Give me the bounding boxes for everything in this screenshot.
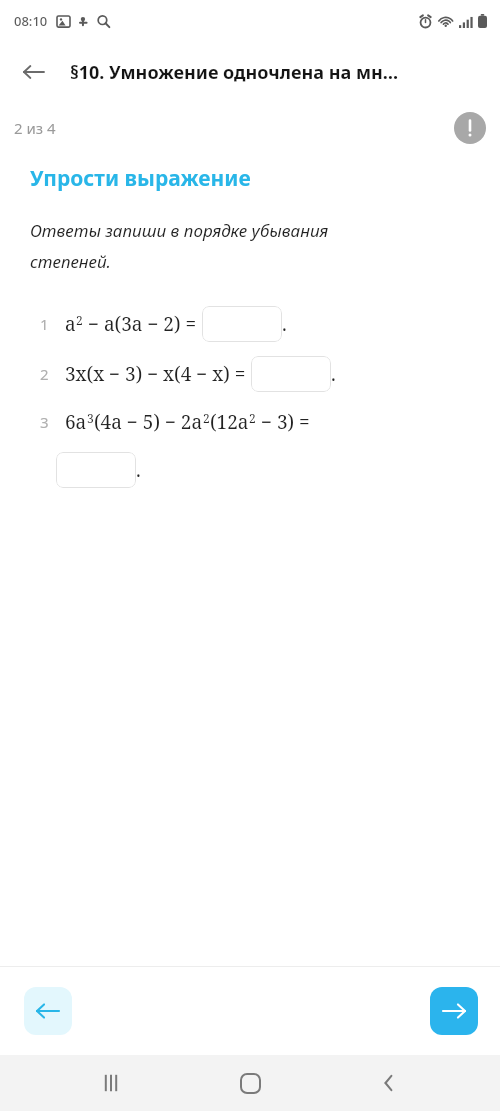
staticText: §10. Умножение одночлена на мн…: [70, 60, 399, 85]
button[interactable]: Back: [361, 1055, 417, 1111]
staticText: 6a: [65, 409, 87, 435]
button[interactable]: Recents: [83, 1055, 139, 1111]
button[interactable]: Previous: [24, 987, 72, 1035]
button[interactable]: Back: [12, 50, 56, 94]
button[interactable]: [251, 356, 331, 392]
button[interactable]: Next: [430, 987, 478, 1035]
staticText: 3: [87, 410, 94, 426]
staticText: Упрости выражение: [30, 164, 251, 193]
staticText: 08:10: [14, 12, 48, 30]
staticText: 1: [40, 314, 49, 334]
staticText: a: [65, 311, 76, 337]
button[interactable]: Info: [454, 112, 486, 144]
button[interactable]: [56, 452, 136, 488]
staticText: 2 из 4: [14, 118, 56, 138]
staticText: Ответы запиши в порядке убывания степене…: [30, 219, 329, 273]
staticText: − 3) =: [256, 409, 310, 435]
staticText: (12a: [210, 409, 249, 435]
staticText: 2: [76, 312, 83, 328]
staticText: 3: [40, 412, 49, 432]
staticText: .: [136, 457, 141, 483]
staticText: 2: [40, 364, 49, 384]
staticText: 2: [249, 410, 256, 426]
staticText: 2: [203, 410, 210, 426]
button[interactable]: Home: [222, 1055, 278, 1111]
button[interactable]: [202, 306, 282, 342]
staticText: (4a − 5) − 2a: [94, 409, 203, 435]
staticText: 3x(x − 3) − x(4 − x) =: [65, 361, 251, 387]
staticText: − a(3a − 2) =: [83, 311, 202, 337]
staticText: .: [282, 311, 287, 337]
staticText: .: [331, 361, 336, 387]
